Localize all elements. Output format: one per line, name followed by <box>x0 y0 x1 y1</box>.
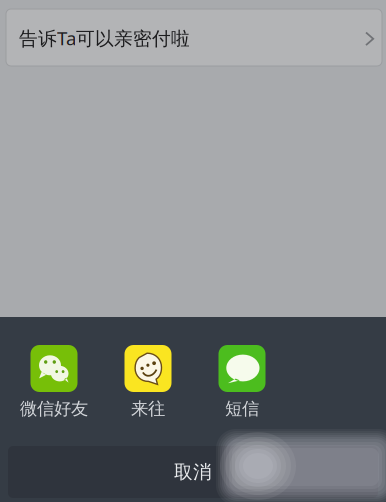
button[interactable]: 告诉Ta可以亲密付啦 <box>6 9 382 66</box>
staticText: 微信好友 <box>20 398 88 419</box>
staticText: 短信 <box>225 398 259 419</box>
button[interactable]: 短信 <box>195 345 289 419</box>
button[interactable]: 来往 <box>101 345 195 419</box>
staticText: 取消 <box>174 460 212 483</box>
staticText: 来往 <box>131 398 165 419</box>
button[interactable]: 取消 <box>8 446 378 498</box>
staticText: 告诉Ta可以亲密付啦 <box>19 26 190 50</box>
button[interactable]: 微信好友 <box>7 345 101 419</box>
